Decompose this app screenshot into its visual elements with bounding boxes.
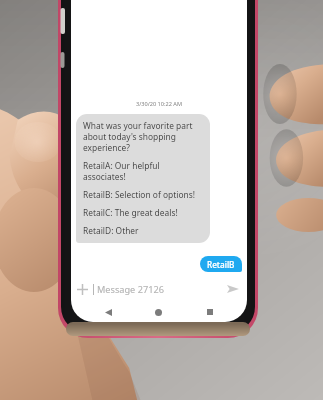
button[interactable]: Add attachment [71,278,93,300]
staticText: RetailC: The great deals! [83,207,178,218]
staticText: associates! [83,171,126,182]
staticText: about today's shopping [83,131,176,142]
staticText: RetailB: Selection of options! [83,189,195,200]
button[interactable]: Recent apps [184,302,235,322]
button[interactable]: Send [221,278,245,300]
button[interactable]: Message 27126 [93,278,221,300]
button[interactable]: RetailB [200,256,242,272]
button[interactable]: What was your favorite part [76,114,210,243]
staticText: RetailA: Our helpful [83,160,160,171]
staticText: 3/30/20 10:22 AM [136,100,183,108]
staticText: RetailB [207,259,235,270]
button[interactable]: Home [133,302,184,322]
staticText: What was your favorite part [83,120,193,131]
button[interactable]: Back [83,302,133,322]
staticText: experience? [83,142,130,153]
staticText: Message 27126 [97,283,164,296]
staticText: RetailD: Other [83,225,139,236]
